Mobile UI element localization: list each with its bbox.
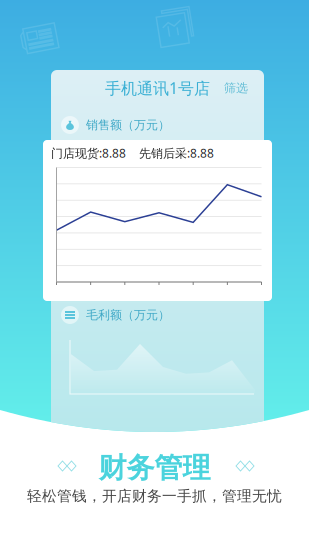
staticText: 轻松管钱，开店财务一手抓，管理无忧 [27,487,282,505]
staticText: 门店现货:8.88 [51,145,126,161]
staticText: 手机通讯1号店 [105,77,210,99]
staticText: 毛利额（万元） [86,308,170,322]
staticText: 筛选 [224,81,248,95]
button[interactable]: 筛选 [219,78,253,98]
staticText: 财务管理 [98,451,210,485]
staticText: 先销后采:8.88 [139,145,214,161]
staticText: 销售额（万元） [86,118,170,132]
